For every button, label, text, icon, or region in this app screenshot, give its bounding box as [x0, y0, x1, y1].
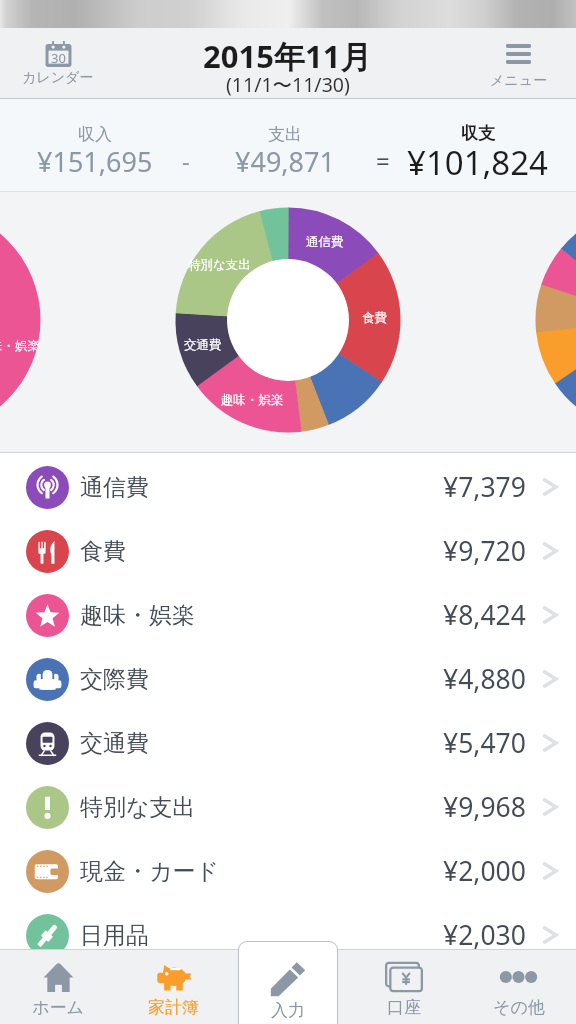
staticText: ¥151,695 — [37, 143, 153, 180]
staticText: ¥9,720 — [443, 533, 526, 569]
staticText: 現金・カード — [80, 857, 220, 886]
staticText: ¥2,030 — [443, 917, 526, 953]
button[interactable]: 現金・カード — [26, 839, 560, 903]
button[interactable]: 交際費 — [26, 647, 560, 711]
staticText: = — [376, 144, 390, 177]
staticText: 趣味・娯楽 — [80, 601, 195, 630]
staticText: 通信費 — [306, 234, 344, 250]
button[interactable]: 日用品 — [26, 903, 560, 967]
button[interactable]: 口座 — [346, 949, 461, 1024]
staticText: 特別な支出 — [80, 793, 196, 822]
button[interactable]: ホーム — [0, 949, 116, 1024]
button[interactable]: 交通費 — [26, 711, 560, 775]
staticText: ¥4,880 — [443, 661, 526, 697]
staticText: 家計簿 — [148, 997, 199, 1018]
button[interactable]: 特別な支出 — [26, 775, 560, 839]
staticText: 通信費 — [80, 473, 149, 502]
staticText: ¥49,871 — [235, 143, 335, 180]
staticText: その他 — [493, 997, 545, 1018]
staticText: メニュー — [490, 72, 547, 90]
staticText: ¥2,000 — [443, 853, 526, 889]
staticText: 味・娯楽 — [0, 338, 40, 354]
staticText: 食費 — [80, 537, 126, 566]
staticText: カレンダー — [22, 69, 94, 87]
staticText: 30 — [51, 49, 66, 67]
staticText: ¥8,424 — [443, 597, 526, 633]
staticText: 2015年11月 — [203, 35, 372, 77]
staticText: ¥7,379 — [443, 469, 526, 505]
staticText: 口座 — [387, 997, 421, 1018]
button[interactable]: 入力 — [239, 942, 337, 1024]
staticText: 入力 — [271, 1000, 305, 1021]
button[interactable]: 家計簿 — [116, 949, 231, 1024]
staticText: 日用品 — [80, 921, 149, 950]
staticText: 収支 — [461, 123, 495, 144]
button[interactable]: 食費 — [26, 519, 560, 583]
staticText: ホーム — [32, 997, 84, 1018]
staticText: 特別な支出 — [188, 257, 251, 273]
staticText: - — [182, 144, 190, 177]
button[interactable]: その他 — [461, 949, 576, 1024]
staticText: 交通費 — [184, 337, 222, 353]
staticText: 趣味・娯楽 — [221, 392, 284, 408]
button[interactable]: 趣味・娯楽 — [26, 583, 560, 647]
staticText: 収入 — [78, 124, 112, 145]
staticText: 交際費 — [80, 665, 149, 694]
staticText: ¥5,470 — [443, 725, 526, 761]
staticText: 支出 — [268, 124, 302, 145]
button[interactable]: 通信費 — [26, 455, 560, 519]
staticText: (11/1〜11/30) — [226, 71, 350, 98]
button[interactable]: カレンダー — [0, 28, 116, 99]
button[interactable]: メニュー — [460, 28, 576, 99]
staticText: 交通費 — [80, 729, 149, 758]
staticText: ¥9,968 — [443, 789, 526, 825]
staticText: 食費 — [362, 310, 387, 326]
staticText: ¥101,824 — [407, 140, 548, 185]
